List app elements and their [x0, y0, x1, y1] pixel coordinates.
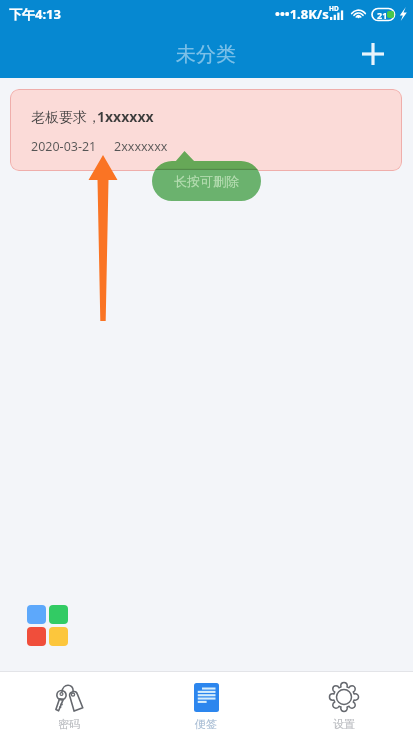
- button[interactable]: 老板要求，1xxxxxx: [10, 89, 402, 171]
- staticText: 2xxxxxxx: [114, 138, 168, 155]
- staticText: HD: [329, 4, 339, 13]
- staticText: 2020-03-21: [31, 138, 97, 155]
- button[interactable]: Add note: [357, 38, 389, 70]
- button[interactable]: 便签: [137, 672, 275, 733]
- button[interactable]: 密码: [0, 672, 137, 733]
- staticText: 下午4:13: [9, 5, 61, 23]
- staticText: •••1.8K/s: [275, 5, 329, 23]
- button[interactable]: 设置: [275, 672, 413, 733]
- staticText: 老板要求，1xxxxxx: [31, 107, 154, 126]
- staticText: 设置: [333, 717, 355, 731]
- staticText: 密码: [58, 717, 80, 731]
- staticText: 未分类: [176, 42, 236, 67]
- staticText: 便签: [195, 717, 217, 731]
- staticText: 21: [377, 9, 388, 21]
- staticText: 长按可删除: [174, 173, 239, 189]
